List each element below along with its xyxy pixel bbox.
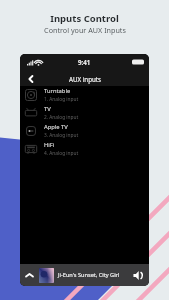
staticText: Control your AUX Inputs: [44, 25, 126, 35]
button[interactable]: Expand player: [23, 269, 36, 282]
staticText: Apple TV: [44, 123, 68, 131]
staticText: TV: [44, 105, 51, 113]
staticText: HiFi: [44, 141, 55, 149]
button[interactable]: Volume: [131, 268, 145, 282]
staticText: Turntable: [44, 87, 71, 95]
button[interactable]: Back: [24, 72, 38, 86]
staticText: 9:41: [78, 58, 91, 66]
button[interactable]: TV: [20, 104, 149, 122]
button[interactable]: HiFi: [20, 140, 149, 158]
staticText: Ji-Eun's Sunset, City Girl: [58, 271, 120, 279]
button[interactable]: Apple TV: [20, 122, 149, 140]
button[interactable]: Turntable: [20, 86, 149, 104]
staticText: Inputs Control: [50, 12, 119, 25]
staticText: 3. Analog input: [44, 132, 79, 139]
staticText: 1. Analog input: [44, 96, 79, 103]
staticText: 2. Analog input: [44, 114, 79, 121]
staticText: AUX inputs: [69, 75, 101, 83]
staticText: 4. Analog input: [44, 150, 79, 157]
